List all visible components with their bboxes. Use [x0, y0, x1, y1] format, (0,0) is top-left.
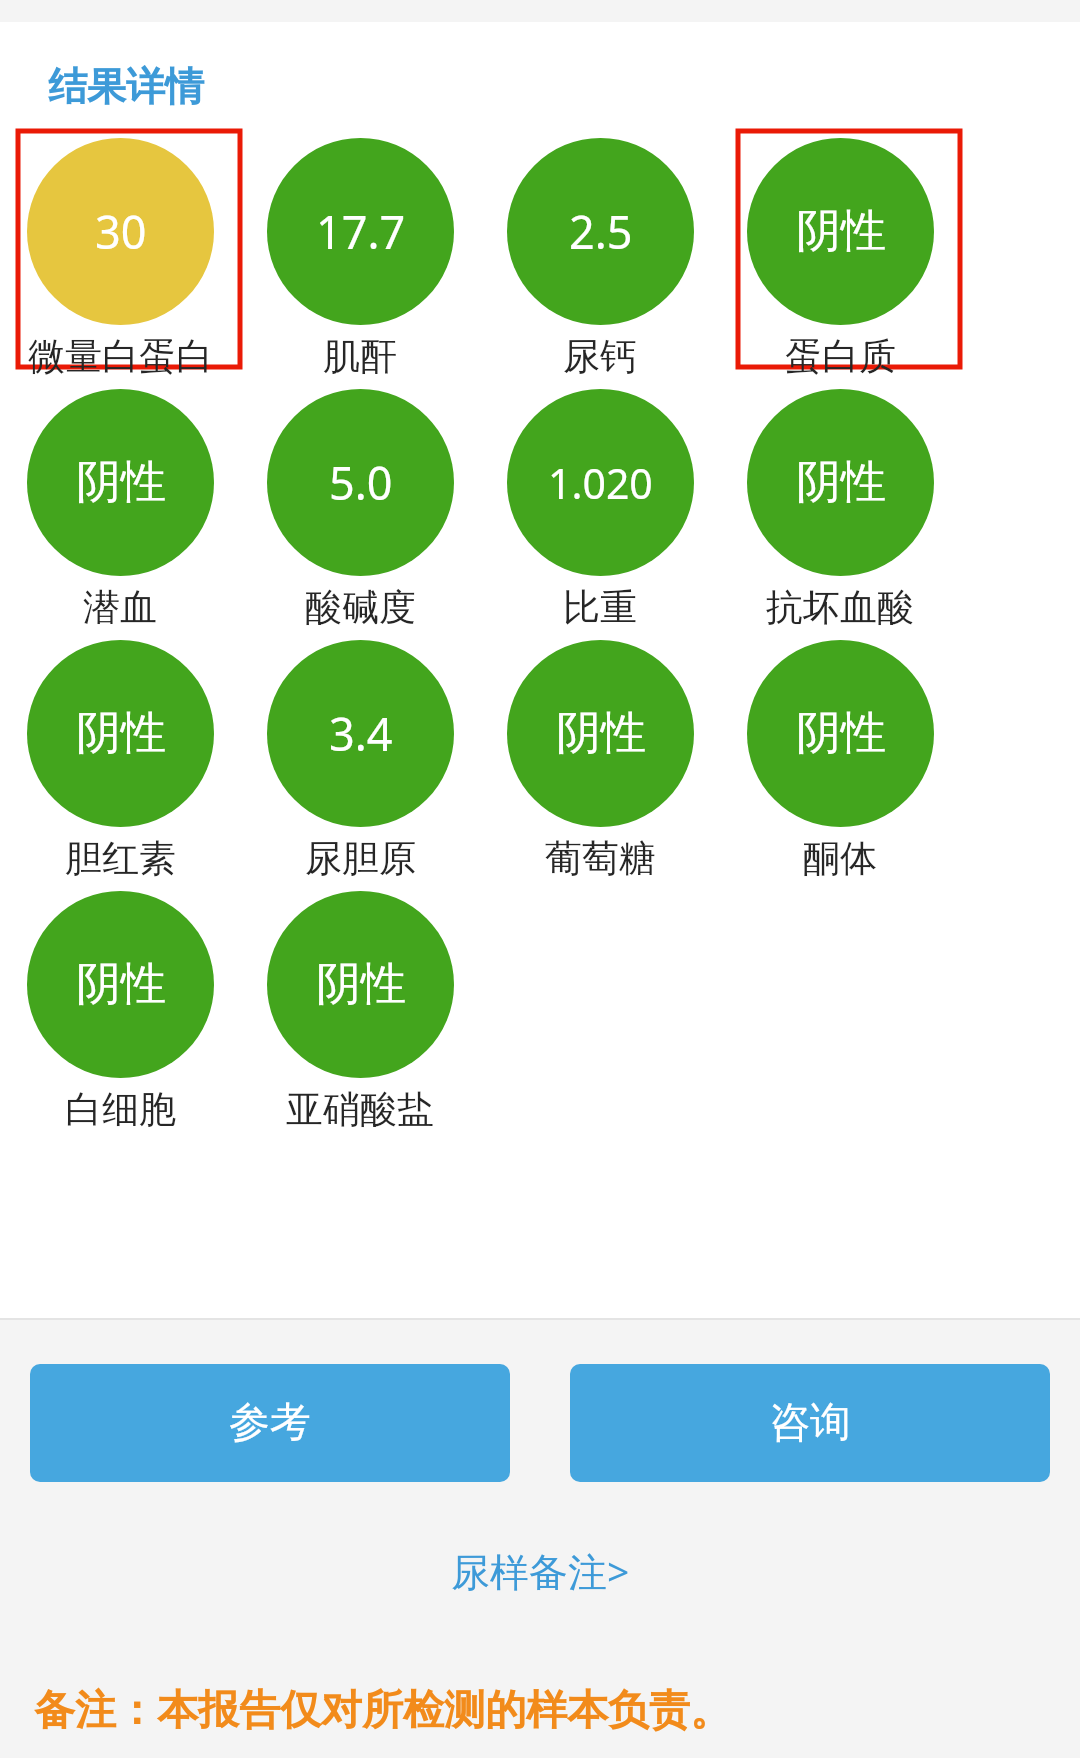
button[interactable]: 阴性: [0, 640, 240, 891]
button[interactable]: 阴性: [720, 389, 960, 640]
button[interactable]: 尿样备注>: [427, 1534, 654, 1607]
staticText: 尿样备注>: [451, 1544, 630, 1597]
staticText: 尿胆原: [305, 835, 416, 882]
staticText: 尿钙: [563, 333, 637, 380]
staticText: 备注：本报告仅对所检测的样本负责。: [34, 1685, 731, 1737]
staticText: 酸碱度: [305, 584, 416, 631]
staticText: 葡萄糖: [545, 835, 656, 882]
button[interactable]: 30: [0, 138, 240, 389]
button[interactable]: 阴性: [480, 640, 720, 891]
button[interactable]: 阴性: [720, 138, 960, 389]
staticText: 阴性: [796, 705, 886, 762]
staticText: 参考: [229, 1397, 311, 1449]
staticText: 3.4: [329, 703, 393, 764]
staticText: 结果详情: [48, 62, 204, 111]
button[interactable]: 阴性: [720, 640, 960, 891]
button[interactable]: 5.0: [240, 389, 480, 640]
button[interactable]: 阴性: [240, 891, 480, 1142]
staticText: 肌酐: [323, 333, 397, 380]
button[interactable]: 参考: [30, 1364, 510, 1482]
staticText: 1.020: [548, 455, 653, 511]
button[interactable]: 2.5: [480, 138, 720, 389]
staticText: 阴性: [76, 956, 166, 1013]
staticText: 咨询: [769, 1397, 851, 1449]
staticText: 抗坏血酸: [766, 584, 914, 631]
staticText: 阴性: [796, 454, 886, 511]
staticText: 比重: [563, 584, 637, 631]
staticText: 17.7: [316, 201, 406, 262]
staticText: 5.0: [329, 452, 393, 513]
button[interactable]: 17.7: [240, 138, 480, 389]
staticText: 阴性: [76, 454, 166, 511]
staticText: 阴性: [556, 705, 646, 762]
staticText: 阴性: [76, 705, 166, 762]
staticText: 微量白蛋白: [28, 333, 213, 380]
button[interactable]: 咨询: [570, 1364, 1050, 1482]
staticText: 亚硝酸盐: [286, 1086, 434, 1133]
button[interactable]: 阴性: [0, 891, 240, 1142]
button[interactable]: 3.4: [240, 640, 480, 891]
staticText: 30: [95, 201, 147, 262]
staticText: 阴性: [796, 203, 886, 260]
staticText: 阴性: [316, 956, 406, 1013]
staticText: 白细胞: [65, 1086, 176, 1133]
button[interactable]: 阴性: [0, 389, 240, 640]
staticText: 蛋白质: [785, 333, 896, 380]
button[interactable]: 1.020: [480, 389, 720, 640]
staticText: 2.5: [569, 201, 633, 262]
staticText: 胆红素: [65, 835, 176, 882]
staticText: 酮体: [803, 835, 877, 882]
staticText: 潜血: [83, 584, 157, 631]
